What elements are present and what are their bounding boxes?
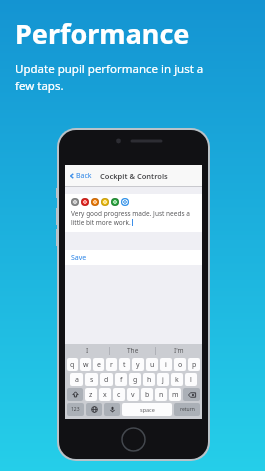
button[interactable]: q — [67, 358, 78, 371]
button[interactable]: x — [99, 388, 111, 401]
button[interactable]: w — [80, 358, 91, 371]
staticText: g — [133, 375, 138, 385]
button[interactable]: e — [93, 358, 104, 371]
button[interactable]: v — [127, 388, 139, 401]
button[interactable]: Save — [65, 250, 202, 265]
button[interactable]: Rating — [91, 198, 99, 206]
staticText: y — [136, 360, 140, 370]
staticText: u — [150, 360, 155, 370]
staticText: Save — [71, 253, 87, 263]
button[interactable]: g — [129, 373, 141, 386]
button[interactable]: Rating — [111, 198, 119, 206]
button[interactable]: Shift — [67, 388, 83, 401]
button[interactable]: h — [143, 373, 155, 386]
button[interactable]: 123 — [67, 403, 84, 416]
staticText: j — [162, 375, 164, 385]
button[interactable]: I'm — [156, 344, 202, 357]
staticText: return — [180, 406, 195, 413]
button[interactable]: m — [169, 388, 181, 401]
staticText: Update pupil performance in just a few t… — [15, 61, 204, 93]
staticText: I'm — [174, 346, 184, 355]
staticText: k — [175, 375, 179, 385]
staticText: n — [159, 390, 164, 400]
button[interactable]: j — [157, 373, 169, 386]
button[interactable]: z — [85, 388, 97, 401]
button[interactable]: Dictate — [104, 403, 120, 416]
button[interactable]: Delete — [183, 388, 200, 401]
button[interactable]: The — [110, 344, 156, 357]
button[interactable]: n — [155, 388, 167, 401]
button[interactable]: c — [113, 388, 125, 401]
staticText: b — [145, 390, 150, 400]
staticText: 123 — [71, 406, 80, 413]
staticText: t — [123, 360, 126, 370]
staticText: z — [89, 390, 93, 400]
button[interactable]: y — [132, 358, 144, 371]
button[interactable]: Rating — [121, 198, 129, 206]
staticText: q — [70, 360, 75, 370]
staticText: a — [75, 375, 79, 385]
button[interactable]: Rating — [71, 198, 79, 206]
button[interactable]: Rating — [101, 198, 109, 206]
staticText: e — [97, 360, 101, 370]
button[interactable]: space — [122, 403, 172, 416]
button[interactable]: I — [65, 344, 110, 357]
button[interactable]: l — [185, 373, 197, 386]
button[interactable]: i — [160, 358, 172, 371]
button[interactable]: t — [119, 358, 130, 371]
staticText: i — [165, 360, 167, 370]
button[interactable]: k — [171, 373, 183, 386]
staticText: s — [90, 375, 94, 385]
staticText: f — [120, 375, 123, 385]
button[interactable]: a — [70, 373, 83, 386]
staticText: o — [178, 360, 183, 370]
staticText: The — [127, 346, 139, 355]
staticText: Back — [76, 171, 92, 181]
button[interactable]: r — [106, 358, 117, 371]
button[interactable]: Rating — [81, 198, 89, 206]
button[interactable]: o — [174, 358, 186, 371]
button[interactable]: b — [141, 388, 153, 401]
staticText: d — [104, 375, 109, 385]
button[interactable]: u — [146, 358, 158, 371]
button[interactable]: Back — [65, 167, 98, 185]
button[interactable]: return — [174, 403, 200, 416]
button[interactable]: p — [188, 358, 200, 371]
staticText: I — [86, 346, 89, 355]
staticText: r — [110, 360, 113, 370]
button[interactable]: f — [115, 373, 127, 386]
button[interactable]: d — [100, 373, 113, 386]
staticText: space — [140, 406, 155, 413]
staticText: w — [83, 360, 89, 370]
button[interactable]: Language — [86, 403, 102, 416]
staticText: Cockpit & Controls — [100, 171, 168, 181]
staticText: Performance — [15, 15, 190, 52]
staticText: Very good progress made. Just needs a — [71, 209, 190, 218]
staticText: m — [172, 390, 179, 400]
staticText: little bit more work. — [71, 218, 131, 227]
staticText: l — [190, 375, 192, 385]
staticText: h — [147, 375, 152, 385]
button[interactable]: s — [85, 373, 98, 386]
staticText: p — [192, 360, 197, 370]
staticText: v — [131, 390, 135, 400]
staticText: x — [103, 390, 107, 400]
staticText: c — [117, 390, 121, 400]
